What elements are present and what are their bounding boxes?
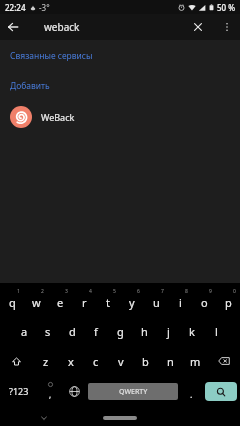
button[interactable]: More options xyxy=(214,14,240,40)
staticText: g xyxy=(117,324,124,339)
button[interactable]: Home xyxy=(103,416,137,420)
staticText: 4 xyxy=(89,288,92,295)
staticText: i xyxy=(179,295,182,310)
staticText: o xyxy=(201,295,208,310)
staticText: 0 xyxy=(233,288,236,295)
button[interactable]: Shift xyxy=(0,346,33,376)
button[interactable]: k xyxy=(180,316,204,346)
staticText: Связанные сервисы xyxy=(10,50,93,62)
button[interactable]: Hide keyboard xyxy=(36,410,52,426)
staticText: h xyxy=(141,324,148,339)
staticText: p xyxy=(225,295,232,310)
button[interactable]: p xyxy=(216,286,240,316)
button[interactable]: d xyxy=(60,316,84,346)
staticText: w xyxy=(32,295,41,310)
staticText: 6 xyxy=(137,288,140,295)
staticText: Добавить xyxy=(10,80,50,92)
button[interactable]: Search xyxy=(205,382,237,401)
staticText: q xyxy=(9,295,16,310)
button[interactable]: x xyxy=(58,346,83,376)
staticText: n xyxy=(167,354,174,369)
staticText: a xyxy=(21,324,28,339)
button[interactable]: o xyxy=(192,286,216,316)
button[interactable]: n xyxy=(158,346,183,376)
button[interactable]: Backspace xyxy=(208,346,240,376)
staticText: 22:24 xyxy=(5,2,26,13)
staticText: t xyxy=(106,295,110,310)
button[interactable]: Clear xyxy=(186,15,210,39)
staticText: d xyxy=(69,324,76,339)
button[interactable]: b xyxy=(133,346,158,376)
button[interactable]: Change keyboard language xyxy=(62,376,86,406)
staticText: 50 % xyxy=(217,2,236,13)
staticText: 2 xyxy=(41,288,44,295)
staticText: 5 xyxy=(113,288,116,295)
button[interactable]: e xyxy=(48,286,72,316)
button[interactable]: s xyxy=(36,316,60,346)
button[interactable]: Emoji xyxy=(38,376,62,406)
button[interactable]: c xyxy=(83,346,108,376)
staticText: ?123 xyxy=(9,385,29,397)
staticText: v xyxy=(118,354,124,369)
button[interactable]: h xyxy=(132,316,156,346)
button[interactable]: w xyxy=(24,286,48,316)
staticText: l xyxy=(215,324,218,339)
staticText: m xyxy=(190,354,201,369)
staticText: 7 xyxy=(161,288,164,295)
staticText: 3 xyxy=(65,288,68,295)
button[interactable]: ?123 xyxy=(0,376,38,406)
button[interactable]: Связанные сервисы xyxy=(0,48,240,64)
button[interactable]: u xyxy=(144,286,168,316)
button[interactable]: j xyxy=(156,316,180,346)
button[interactable]: y xyxy=(120,286,144,316)
button[interactable]: z xyxy=(33,346,58,376)
staticText: c xyxy=(93,354,99,369)
staticText: u xyxy=(153,295,160,310)
button[interactable]: l xyxy=(204,316,228,346)
staticText: s xyxy=(45,324,51,339)
staticText: e xyxy=(57,295,64,310)
button[interactable]: g xyxy=(108,316,132,346)
button[interactable]: f xyxy=(84,316,108,346)
button[interactable]: t xyxy=(96,286,120,316)
staticText: f xyxy=(94,324,98,339)
staticText: QWERTY xyxy=(119,387,148,397)
button[interactable]: WeBack xyxy=(0,102,240,132)
staticText: WeBack xyxy=(41,111,75,123)
button[interactable]: v xyxy=(108,346,133,376)
staticText: j xyxy=(167,324,170,339)
staticText: 8 xyxy=(185,288,188,295)
button[interactable]: i xyxy=(168,286,192,316)
staticText: r xyxy=(82,295,87,310)
staticText: x xyxy=(68,354,74,369)
staticText: 9 xyxy=(209,288,212,295)
staticText: y xyxy=(129,295,135,310)
button[interactable]: Добавить xyxy=(0,78,240,94)
button[interactable]: QWERTY xyxy=(88,383,178,400)
button[interactable]: . xyxy=(180,376,202,406)
staticText: k xyxy=(189,324,195,339)
button[interactable]: q xyxy=(0,286,24,316)
staticText: -3° xyxy=(39,2,50,13)
staticText: . xyxy=(190,388,193,400)
staticText: z xyxy=(43,354,49,369)
button[interactable]: a xyxy=(12,316,36,346)
staticText: , xyxy=(49,389,52,400)
staticText: weback xyxy=(44,20,80,34)
staticText: b xyxy=(142,354,149,369)
button[interactable]: m xyxy=(183,346,208,376)
button[interactable]: r xyxy=(72,286,96,316)
staticText: 1 xyxy=(17,288,20,295)
button[interactable]: Back xyxy=(0,14,26,40)
